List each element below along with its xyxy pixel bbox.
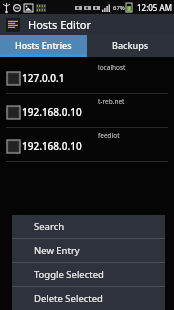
- staticText: 12:05 AM: [137, 2, 172, 13]
- staticText: Backups: [112, 39, 149, 51]
- button[interactable]: Select 192.168.0.10: [7, 106, 20, 119]
- button[interactable]: localhost: [0, 60, 174, 93]
- staticText: Hosts Editor: [28, 17, 92, 32]
- staticText: feedlot: [98, 131, 120, 140]
- staticText: 192.168.0.10: [22, 139, 82, 153]
- staticText: 127.0.0.1: [22, 71, 65, 85]
- other: App icon: [6, 18, 20, 32]
- button[interactable]: Delete Selected: [12, 287, 165, 310]
- staticText: Hosts Entries: [15, 39, 72, 51]
- button[interactable]: Select 127.0.0.1: [7, 72, 20, 85]
- staticText: 67%: [113, 4, 125, 12]
- button[interactable]: t-reb.net: [0, 94, 174, 127]
- button[interactable]: Backups: [87, 35, 174, 54]
- staticText: New Entry: [34, 244, 80, 257]
- staticText: Delete Selected: [34, 292, 103, 305]
- staticText: t-reb.net: [98, 97, 125, 106]
- button[interactable]: Select 192.168.0.10: [7, 140, 20, 153]
- staticText: localhost: [98, 63, 126, 72]
- button[interactable]: feedlot: [0, 128, 174, 161]
- button[interactable]: New Entry: [12, 239, 165, 262]
- button[interactable]: Hosts Entries: [0, 35, 87, 54]
- staticText: Search: [34, 220, 65, 233]
- staticText: Toggle Selected: [34, 268, 104, 281]
- staticText: 192.168.0.10: [22, 105, 82, 119]
- button[interactable]: Search: [12, 215, 165, 238]
- button[interactable]: Toggle Selected: [12, 263, 165, 286]
